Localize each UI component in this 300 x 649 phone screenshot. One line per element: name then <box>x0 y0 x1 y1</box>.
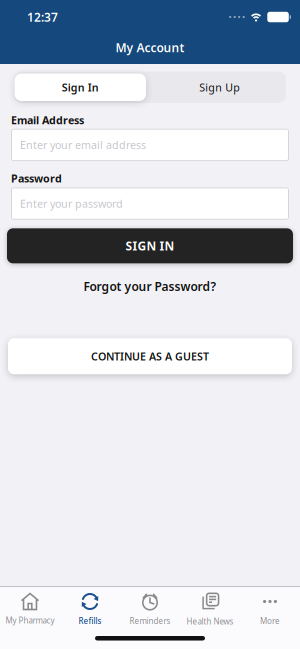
button[interactable]: Enter your password <box>0 187 300 220</box>
staticText: SIGN IN <box>125 238 174 254</box>
button[interactable]: Enter your email address <box>0 129 300 161</box>
staticText: Forgot your Password? <box>83 278 216 294</box>
staticText: More <box>260 615 280 626</box>
staticText: My Pharmacy <box>5 615 54 626</box>
staticText: Sign In <box>62 80 99 94</box>
staticText: Password <box>11 171 62 185</box>
staticText: Reminders <box>129 615 170 626</box>
staticText: Enter your email address <box>20 138 146 152</box>
button[interactable]: SIGN IN <box>0 228 300 263</box>
staticText: My Account <box>115 39 184 55</box>
button[interactable]: Forgot your Password? <box>0 278 300 294</box>
staticText: 12:37 <box>27 9 58 25</box>
button[interactable]: Health News <box>180 592 240 627</box>
staticText: Email Address <box>11 113 84 127</box>
staticText: CONTINUE AS A GUEST <box>91 349 209 363</box>
button[interactable]: More <box>240 592 300 626</box>
button[interactable]: Reminders <box>120 592 180 626</box>
button[interactable]: Sign Up <box>154 73 285 101</box>
button[interactable]: My Pharmacy <box>0 593 60 626</box>
staticText: Health News <box>186 616 233 627</box>
staticText: Refills <box>78 615 101 626</box>
button[interactable]: Refills <box>60 592 120 626</box>
button[interactable]: Sign In <box>14 73 146 101</box>
button[interactable]: CONTINUE AS A GUEST <box>0 338 300 374</box>
staticText: Enter your password <box>20 196 123 211</box>
staticText: Sign Up <box>199 80 240 94</box>
